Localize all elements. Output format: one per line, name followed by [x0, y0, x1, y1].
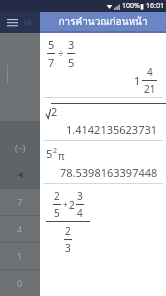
- staticText: การคำนวณก่อนหน้า: [58, 14, 148, 30]
- staticText: 2: [69, 198, 75, 212]
- staticText: +: [63, 199, 68, 210]
- button[interactable]: Backspace: [0, 162, 40, 188]
- staticText: เค: [24, 16, 33, 29]
- staticText: 1.4142135623731: [66, 122, 158, 137]
- staticText: 5: [68, 55, 75, 70]
- button[interactable]: (−): [0, 135, 40, 161]
- button[interactable]: 5: [40, 141, 166, 184]
- staticText: π: [58, 149, 65, 163]
- staticText: 4: [147, 65, 153, 79]
- staticText: 3: [65, 241, 71, 255]
- staticText: 100%: [122, 1, 140, 11]
- staticText: 3: [77, 189, 83, 203]
- staticText: 1: [17, 250, 23, 262]
- button[interactable]: Open navigation drawer: [0, 12, 40, 33]
- button[interactable]: 0: [0, 270, 40, 296]
- staticText: 4: [77, 206, 83, 220]
- staticText: 2: [51, 104, 58, 119]
- staticText: 2: [53, 146, 58, 156]
- staticText: 7: [17, 196, 23, 208]
- button[interactable]: 2: [40, 184, 166, 255]
- staticText: ÷: [58, 47, 64, 61]
- staticText: 5: [46, 146, 53, 161]
- staticText: 5: [48, 37, 55, 52]
- staticText: 4: [17, 223, 23, 235]
- button[interactable]: 4: [0, 216, 40, 242]
- staticText: 7: [48, 55, 55, 70]
- staticText: 16:01: [146, 1, 164, 11]
- staticText: 2: [65, 224, 71, 238]
- button[interactable]: 1: [0, 243, 40, 269]
- staticText: 21: [144, 82, 156, 96]
- button[interactable]: 2: [40, 98, 166, 141]
- staticText: 5: [54, 206, 60, 220]
- button[interactable]: การคำนวณก่อนหน้า: [40, 12, 166, 31]
- staticText: 2: [54, 189, 60, 203]
- staticText: 0: [17, 277, 23, 289]
- button[interactable]: 7: [0, 189, 40, 215]
- staticText: 78.5398163397448: [60, 165, 158, 180]
- staticText: 1: [134, 73, 141, 88]
- staticText: 3: [68, 37, 75, 52]
- staticText: (−): [15, 142, 26, 154]
- button[interactable]: 5: [40, 33, 166, 98]
